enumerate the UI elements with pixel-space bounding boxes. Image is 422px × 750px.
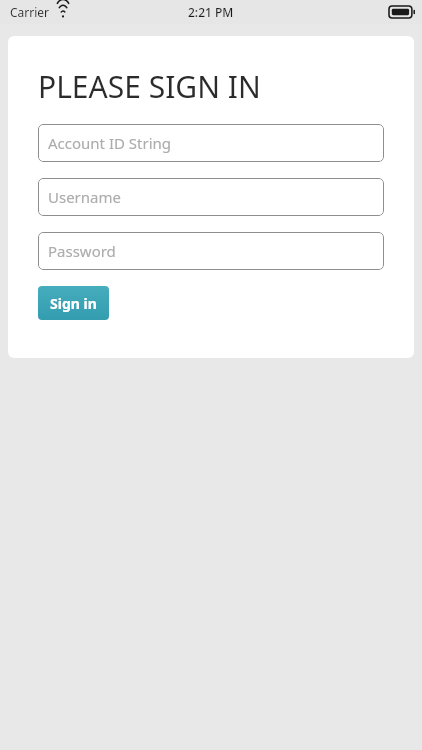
staticText: 2:21 PM [188, 4, 234, 20]
staticText: Password [48, 241, 116, 261]
button[interactable]: Password [38, 232, 384, 270]
staticText: Account ID String [48, 133, 172, 153]
other: Battery full [389, 6, 415, 18]
staticText: PLEASE SIGN IN [38, 66, 261, 107]
other: Wi-Fi signal [56, 7, 70, 18]
button[interactable]: Account ID String [38, 124, 384, 162]
button[interactable]: Username [38, 178, 384, 216]
button[interactable]: Sign in [38, 286, 109, 320]
staticText: Carrier [10, 4, 50, 20]
staticText: Username [48, 187, 121, 207]
staticText: Sign in [50, 294, 97, 313]
